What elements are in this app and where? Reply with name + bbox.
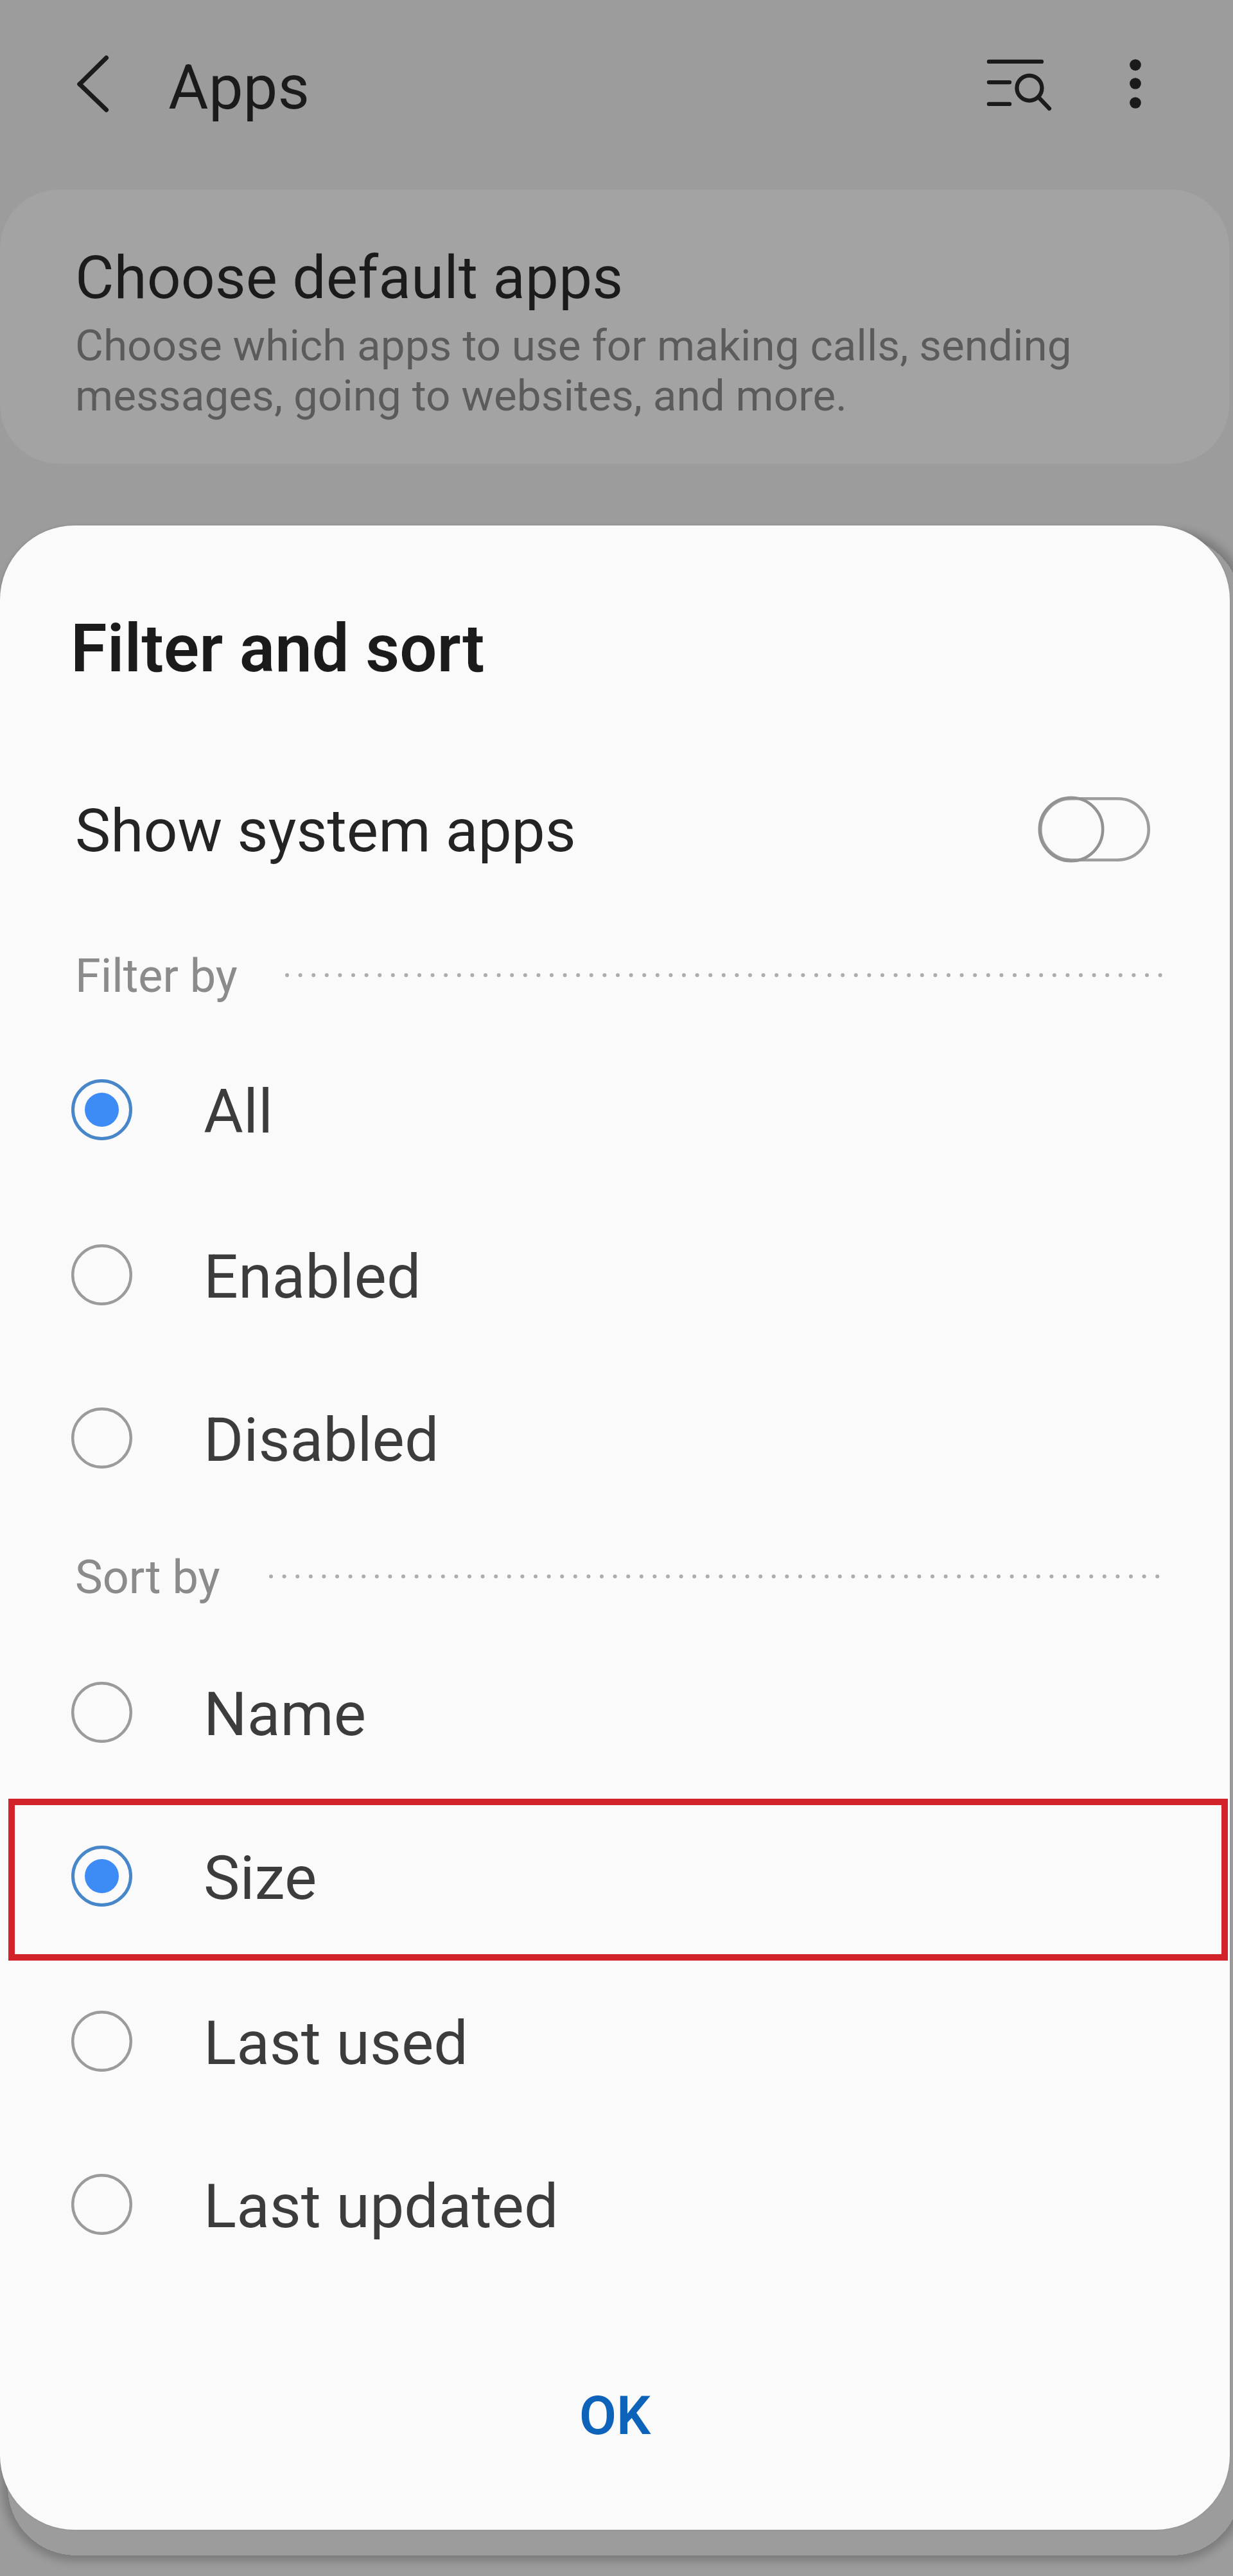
staticText: Disabled [204,1404,439,1476]
staticText: Last updated [204,2171,559,2242]
staticText: Name [204,1679,367,1750]
button[interactable]: Search [968,37,1065,134]
staticText: Choose default apps [75,243,624,313]
button[interactable]: More options [1087,37,1184,134]
button[interactable]: Show system apps [0,757,1230,901]
button[interactable]: Navigate up [35,37,132,134]
button[interactable]: All [0,1028,1230,1190]
button[interactable]: Last used [0,1960,1230,2122]
staticText: Filter by [75,949,238,1003]
button[interactable]: OK [0,2338,1230,2492]
staticText: Size [204,1842,317,1914]
button[interactable]: Choose default apps [0,190,1229,464]
staticText: Filter and sort [71,610,485,687]
button[interactable]: Name [0,1631,1230,1793]
button[interactable]: Last updated [0,2123,1230,2285]
button[interactable]: Disabled [0,1357,1230,1519]
staticText: Enabled [204,1241,421,1312]
staticText: All [204,1076,274,1147]
staticText: Choose which apps to use for making call… [75,320,1072,421]
staticText: Show system apps [75,796,576,866]
staticText: Sort by [75,1550,220,1604]
staticText: Apps [168,51,310,124]
staticText: Last used [204,2007,468,2079]
button[interactable]: Enabled [0,1194,1230,1355]
button[interactable]: Size [0,1795,1230,1957]
staticText: OK [579,2384,651,2447]
